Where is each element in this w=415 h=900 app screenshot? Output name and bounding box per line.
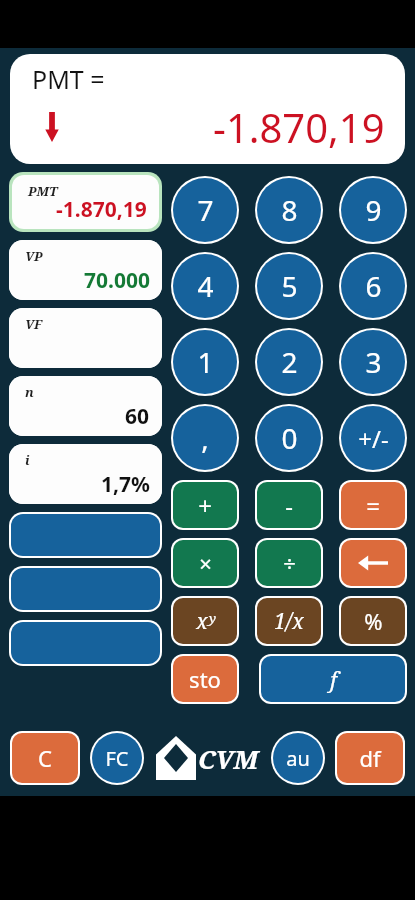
- staticText: 60: [125, 402, 150, 431]
- staticText: -1.870,19: [56, 195, 147, 224]
- button[interactable]: +/-: [341, 406, 405, 470]
- button[interactable]: Memory slot: [11, 622, 160, 664]
- button[interactable]: 9: [341, 178, 405, 242]
- button[interactable]: VF: [9, 308, 162, 368]
- staticText: 3: [365, 343, 382, 381]
- staticText: 7: [197, 191, 214, 229]
- staticText: +: [198, 489, 212, 522]
- button[interactable]: ×: [173, 540, 237, 586]
- staticText: ,: [201, 419, 209, 457]
- staticText: VP: [25, 247, 43, 265]
- button[interactable]: =: [341, 482, 405, 528]
- button[interactable]: 3: [341, 330, 405, 394]
- button[interactable]: Memory slot: [11, 514, 160, 556]
- staticText: 1,7%: [101, 470, 150, 499]
- button[interactable]: 6: [341, 254, 405, 318]
- staticText: +/-: [358, 422, 389, 455]
- staticText: PMT =: [32, 62, 105, 96]
- button[interactable]: 7: [173, 178, 237, 242]
- staticText: =: [366, 489, 380, 522]
- staticText: ×: [199, 548, 212, 578]
- staticText: C: [38, 743, 52, 773]
- button[interactable]: 0: [257, 406, 321, 470]
- staticText: 2: [281, 343, 298, 381]
- button[interactable]: n: [9, 376, 162, 436]
- button[interactable]: 4: [173, 254, 237, 318]
- button[interactable]: VP: [9, 240, 162, 300]
- staticText: ÷: [283, 548, 296, 578]
- button[interactable]: %: [341, 598, 405, 644]
- staticText: %: [364, 606, 383, 636]
- staticText: 1: [197, 343, 214, 381]
- button[interactable]: 5: [257, 254, 321, 318]
- button[interactable]: xʸ: [173, 598, 237, 644]
- staticText: 0: [281, 419, 298, 457]
- staticText: sto: [189, 664, 221, 694]
- button[interactable]: f: [261, 656, 405, 702]
- button[interactable]: sto: [173, 656, 237, 702]
- button[interactable]: Backspace: [341, 540, 405, 586]
- staticText: xʸ: [196, 607, 215, 636]
- staticText: -: [285, 489, 293, 522]
- staticText: FC: [105, 745, 129, 772]
- staticText: f: [330, 664, 337, 694]
- button[interactable]: 1: [173, 330, 237, 394]
- staticText: i: [25, 451, 30, 469]
- staticText: 8: [281, 191, 298, 229]
- button[interactable]: PMT =: [10, 54, 405, 164]
- button[interactable]: +: [173, 482, 237, 528]
- staticText: VF: [25, 315, 43, 333]
- button[interactable]: ,: [173, 406, 237, 470]
- staticText: 70.000: [84, 266, 150, 295]
- staticText: PMT: [28, 182, 58, 200]
- button[interactable]: PMT: [12, 175, 159, 229]
- staticText: df: [359, 743, 381, 773]
- staticText: 4: [197, 267, 214, 305]
- button[interactable]: 8: [257, 178, 321, 242]
- button[interactable]: ÷: [257, 540, 321, 586]
- button[interactable]: df: [337, 733, 403, 783]
- button[interactable]: au: [273, 733, 323, 783]
- staticText: 9: [365, 191, 382, 229]
- button[interactable]: 1/x: [257, 598, 321, 644]
- button[interactable]: FC: [92, 733, 142, 783]
- button[interactable]: Memory slot: [11, 568, 160, 610]
- staticText: n: [25, 383, 34, 401]
- button[interactable]: i: [9, 444, 162, 504]
- staticText: au: [286, 745, 310, 772]
- staticText: 5: [281, 267, 298, 305]
- button[interactable]: C: [12, 733, 78, 783]
- staticText: 1/x: [274, 607, 304, 636]
- staticText: 6: [365, 267, 382, 305]
- staticText: CVM: [198, 741, 259, 776]
- button[interactable]: -: [257, 482, 321, 528]
- button[interactable]: 2: [257, 330, 321, 394]
- staticText: -1.870,19: [213, 100, 385, 154]
